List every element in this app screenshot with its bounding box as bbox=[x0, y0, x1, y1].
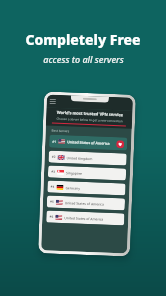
button[interactable]: #5 bbox=[47, 195, 125, 210]
staticText: United States of America bbox=[64, 215, 121, 221]
staticText: Choose a server below to get a new conne… bbox=[56, 117, 123, 123]
staticText: United States of America bbox=[67, 139, 116, 146]
button[interactable]: Menu bbox=[50, 98, 56, 105]
button[interactable]: #3 bbox=[48, 165, 126, 180]
staticText: United States of America bbox=[65, 200, 122, 206]
staticText: Germany bbox=[65, 185, 122, 191]
button[interactable]: #6 bbox=[46, 210, 124, 225]
staticText: #4 bbox=[50, 185, 55, 189]
staticText: #2 bbox=[52, 155, 56, 159]
staticText: Singapore bbox=[66, 170, 123, 176]
staticText: #5 bbox=[50, 200, 54, 204]
staticText: #6 bbox=[49, 215, 53, 219]
button[interactable]: #4 bbox=[47, 180, 126, 195]
staticText: United Kingdom bbox=[67, 155, 124, 161]
button[interactable]: #2 bbox=[48, 150, 127, 165]
staticText: access to all servers bbox=[43, 53, 124, 65]
staticText: #1 bbox=[52, 140, 56, 144]
staticText: #3 bbox=[51, 170, 55, 174]
staticText: World's most trusted VPN service bbox=[56, 110, 123, 117]
staticText: Best Servers bbox=[52, 129, 70, 133]
staticText: Completely Free bbox=[25, 30, 141, 49]
button[interactable]: #1 bbox=[49, 134, 127, 150]
button[interactable]: Favourite bbox=[116, 140, 124, 148]
